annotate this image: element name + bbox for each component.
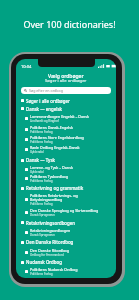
other: Toggle — [25, 117, 28, 120]
button[interactable]: Toggle — [25, 193, 112, 206]
staticText: Vælg ordbøger — [48, 73, 84, 80]
staticText: Politikens Tyskordbog — [30, 174, 69, 179]
staticText: Gyldendal — [30, 170, 44, 174]
staticText: Søg efter en ordbog — [29, 88, 63, 93]
button[interactable]: Toggle — [25, 144, 112, 155]
staticText: Dansk Sprognævn — [30, 233, 55, 237]
button[interactable]: Toggle — [21, 104, 116, 113]
button[interactable]: Toggle — [25, 134, 112, 144]
other: Toggle — [21, 241, 24, 244]
staticText: Politikens Retskrivnings- og Betydningso… — [30, 193, 78, 202]
staticText: Lindhardt og Ringhof — [30, 119, 59, 123]
staticText: Politikens Store Engelskordbog — [30, 135, 84, 140]
button[interactable]: Toggle — [25, 267, 112, 276]
staticText: Dansk Sprognævn — [30, 213, 55, 217]
staticText: 10:04 — [21, 64, 32, 69]
other: Toggle — [21, 107, 24, 110]
staticText: Politikens Forlag — [30, 202, 53, 206]
button[interactable]: Toggle — [25, 124, 112, 134]
button[interactable]: Toggle — [21, 183, 116, 193]
other: Toggle — [25, 251, 28, 254]
button[interactable]: Toggle — [21, 97, 116, 104]
staticText: Politikens Forlag — [30, 130, 53, 134]
staticText: Den Danske Sprogbog og Skriveordbog — [30, 208, 99, 213]
other: Toggle — [21, 159, 24, 162]
other: Toggle — [21, 187, 24, 190]
other: Toggle — [25, 128, 28, 131]
other: Toggle — [25, 138, 28, 141]
button[interactable]: Søg efter en ordbog — [21, 87, 111, 94]
button[interactable]: Toggle — [21, 218, 116, 227]
other: Toggle — [21, 221, 24, 224]
staticText: Retskrivning og grammatik — [26, 185, 84, 191]
button[interactable]: Toggle — [25, 247, 112, 257]
other: Toggle — [21, 261, 24, 264]
staticText: Ordbog for Fremmedord — [30, 253, 64, 257]
staticText: Den Danske Ritordbog — [26, 239, 74, 245]
staticText: Nudansk Ordbog — [26, 259, 62, 265]
staticText: Retskrivningsordbogen — [26, 220, 76, 226]
button[interactable]: Toggle — [25, 165, 112, 174]
staticText: Over 100 dictionaries! — [0, 18, 139, 30]
staticText: Politikens Forlag — [30, 272, 53, 276]
staticText: Lomme- og Tysk – Dansk — [30, 165, 73, 170]
button[interactable]: Toggle — [21, 237, 116, 247]
button[interactable]: Toggle — [25, 206, 112, 218]
other: Toggle — [25, 148, 28, 151]
staticText: Røde Ordbog Engelsk-Dansk — [30, 145, 80, 150]
staticText: Politikens Forlag — [30, 179, 53, 183]
other: Toggle — [25, 231, 28, 234]
button[interactable]: Toggle — [25, 174, 112, 183]
staticText: Politikens Dansk-Engelsk — [30, 125, 74, 130]
staticText: Søger i alle ordbøger — [26, 98, 70, 104]
button[interactable]: Toggle — [21, 257, 116, 267]
button[interactable]: Toggle — [21, 155, 116, 165]
other: Toggle — [25, 198, 28, 201]
other: Toggle — [25, 270, 28, 273]
staticText: Politikens Forlag — [30, 140, 53, 144]
staticText: Retskrivningsordbogen — [30, 228, 71, 233]
other: Toggle — [25, 177, 28, 180]
staticText: Den Danske Ritordbog — [30, 248, 70, 253]
staticText: Dansk — engelsk — [26, 106, 63, 112]
other: Toggle — [21, 99, 24, 102]
other: Toggle — [25, 168, 28, 171]
staticText: Søger i alle ordbøger — [45, 78, 87, 84]
staticText: Politikens Nudansk Ordbog — [30, 267, 78, 272]
button[interactable]: Toggle — [25, 113, 112, 124]
staticText: Dansk — Tysk — [26, 157, 56, 163]
staticText: Gyldendal — [30, 150, 44, 154]
staticText: Lommeordbogen Engelsk – Dansk — [30, 114, 90, 119]
other: Toggle — [25, 211, 28, 214]
button[interactable]: Toggle — [25, 227, 112, 237]
